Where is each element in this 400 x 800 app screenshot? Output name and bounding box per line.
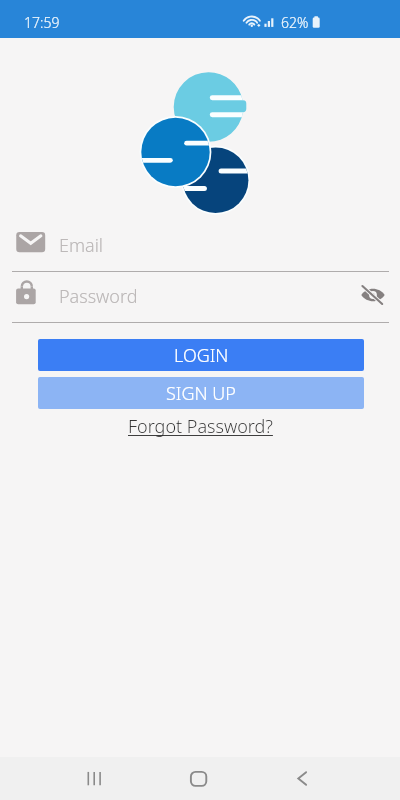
button[interactable]: LOGIN xyxy=(38,339,364,371)
staticText: SIGN UP xyxy=(166,381,236,406)
staticText: Email xyxy=(59,233,104,258)
button[interactable]: Password xyxy=(0,272,400,323)
button[interactable]: Recent apps xyxy=(60,757,128,800)
staticText: Password xyxy=(59,284,138,309)
staticText: LOGIN xyxy=(174,343,229,368)
button[interactable]: Back xyxy=(266,757,334,800)
button[interactable]: Email xyxy=(0,221,400,272)
staticText: 62% xyxy=(281,13,309,32)
button[interactable]: Home xyxy=(165,757,233,800)
button[interactable]: Show password xyxy=(352,277,394,319)
staticText: 17:59 xyxy=(24,13,60,32)
button[interactable]: Forgot Password? xyxy=(126,412,275,441)
button[interactable]: SIGN UP xyxy=(38,377,364,409)
